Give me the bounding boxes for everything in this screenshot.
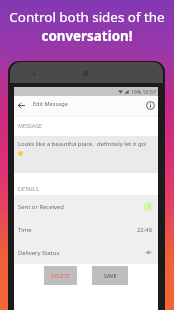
button[interactable]: Delivery Status: [14, 241, 158, 264]
staticText: Looks like a beautiful place, definitely…: [18, 140, 147, 148]
staticText: Time: [18, 226, 32, 234]
button[interactable]: Info: [144, 96, 158, 116]
staticText: SAVE: [104, 272, 117, 279]
staticText: 16% 10:57: [131, 88, 156, 95]
staticText: Edit Message: [33, 100, 68, 108]
staticText: conversation!: [41, 27, 133, 45]
staticText: DETAILS: [18, 185, 39, 192]
button[interactable]: SAVE: [92, 266, 128, 285]
button[interactable]: Time: [14, 218, 158, 241]
staticText: Sent or Received: [18, 203, 64, 211]
button[interactable]: Back: [14, 96, 28, 116]
staticText: DELETE: [51, 272, 70, 279]
staticText: Delivery Status: [18, 249, 60, 257]
button[interactable]: DELETE: [44, 266, 77, 285]
staticText: MESSAGE: [18, 122, 43, 129]
button[interactable]: Sent or Received: [14, 195, 158, 218]
staticText: Control both sides of the: [9, 8, 165, 26]
staticText: 22:48: [137, 226, 153, 234]
